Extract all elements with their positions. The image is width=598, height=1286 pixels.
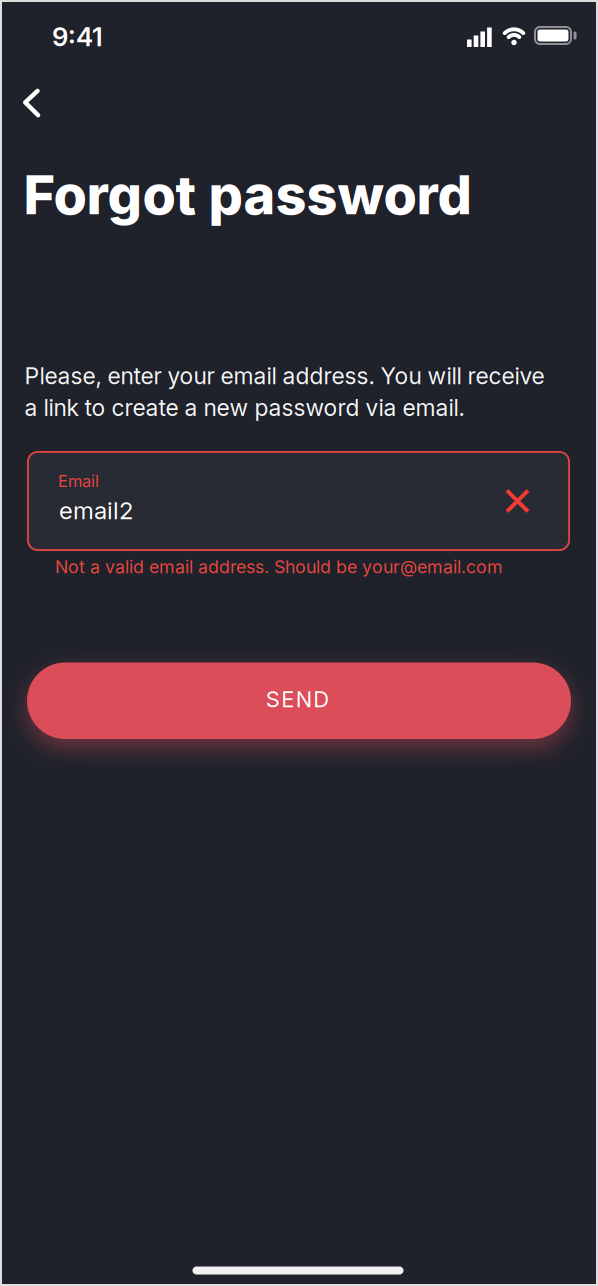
staticText: Not a valid email address. Should be you… (55, 556, 503, 577)
staticText: Please, enter your email address. You wi… (24, 362, 544, 422)
button[interactable]: Clear email (495, 479, 539, 523)
staticText: 9:41 (52, 21, 103, 52)
staticText: SEND (266, 686, 329, 712)
staticText: Email (58, 471, 99, 491)
staticText: email2 (59, 496, 133, 525)
staticText: Forgot password (23, 162, 471, 227)
button[interactable]: Back (10, 81, 54, 125)
button[interactable]: SEND (27, 662, 571, 739)
button[interactable]: Email (27, 451, 570, 551)
